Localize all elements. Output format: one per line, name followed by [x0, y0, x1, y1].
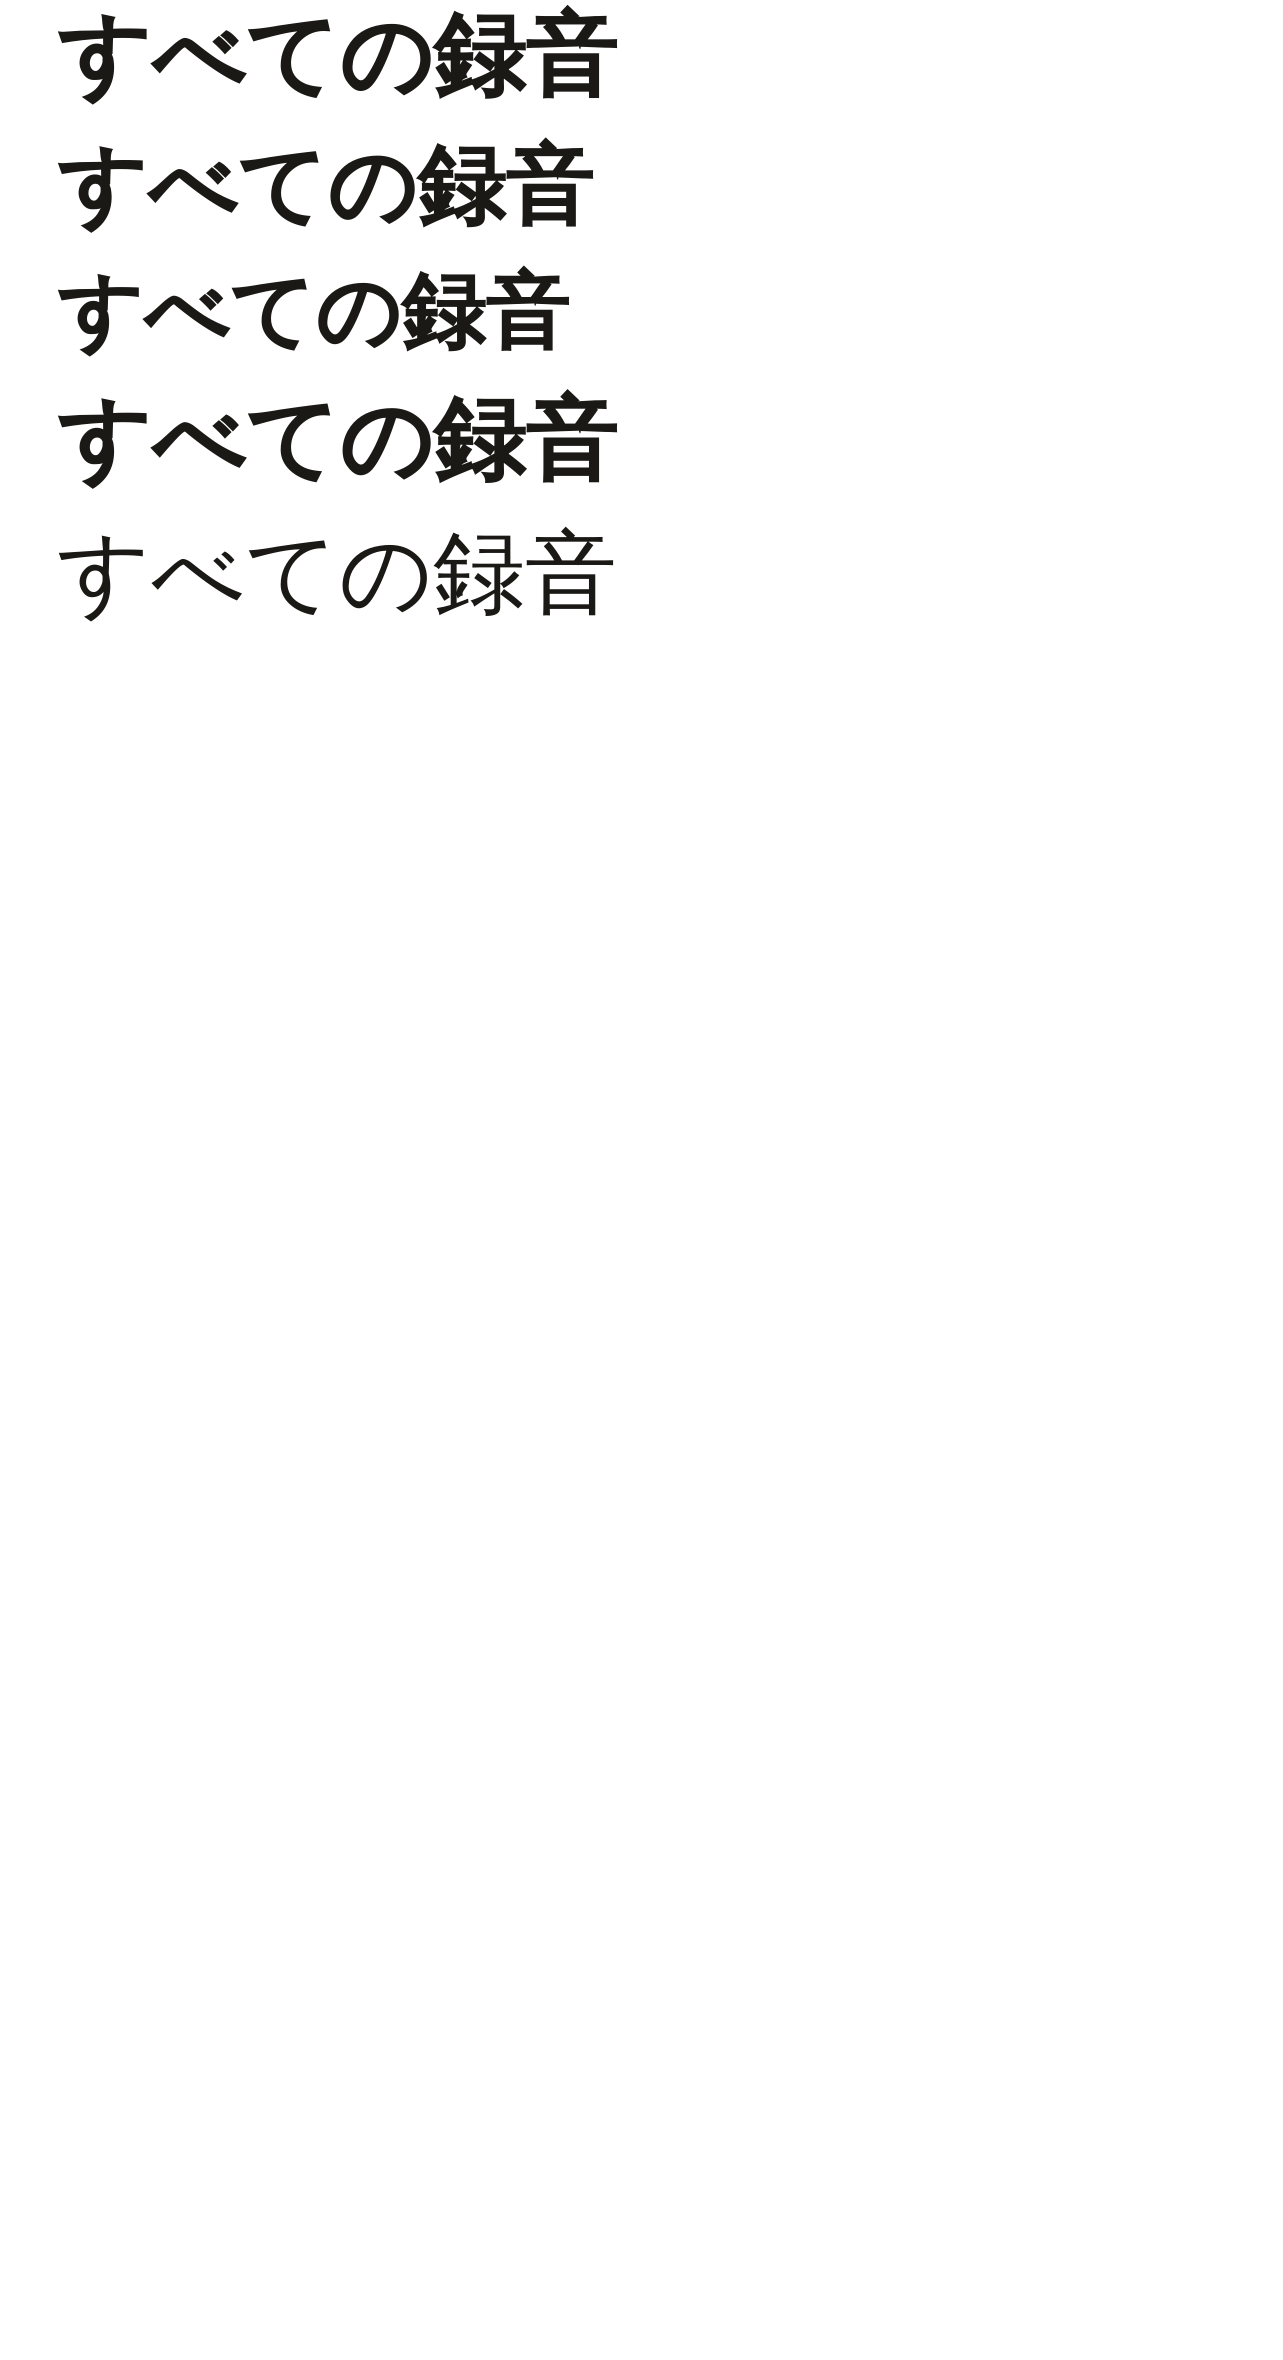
staticText: すべての録音: [57, 517, 617, 630]
staticText: すべての録音: [57, 133, 593, 241]
staticText: すべての録音: [57, 384, 617, 497]
staticText: すべての録音: [57, 261, 569, 364]
staticText: すべての録音: [57, 0, 617, 113]
